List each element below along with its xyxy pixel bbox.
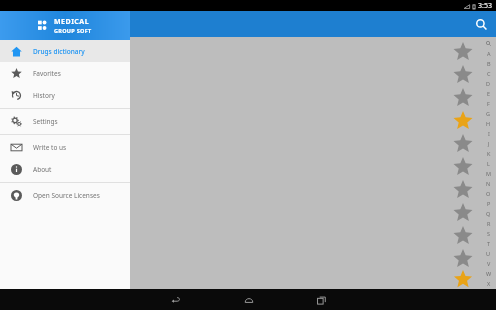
staticText: H	[486, 120, 491, 127]
button[interactable]: G	[484, 108, 493, 118]
button[interactable]: J	[484, 138, 493, 148]
staticText: F	[487, 100, 490, 107]
button[interactable]: X	[484, 278, 493, 288]
button[interactable]: M	[484, 168, 493, 178]
staticText: C	[487, 70, 491, 77]
button[interactable]: Home	[240, 291, 258, 309]
staticText: About	[33, 165, 52, 174]
button[interactable]: Rating star	[451, 155, 474, 178]
button[interactable]: Search	[472, 15, 490, 33]
staticText: MEDICAL	[54, 17, 90, 27]
button[interactable]: P	[484, 198, 493, 208]
button[interactable]: Q	[484, 208, 493, 218]
button[interactable]: E	[484, 88, 493, 98]
button[interactable]: Rating star	[451, 86, 474, 109]
button[interactable]: Rating star	[451, 224, 474, 247]
staticText: T	[487, 240, 491, 247]
staticText: 3:53	[478, 1, 492, 11]
staticText: L	[487, 160, 490, 167]
button[interactable]: S	[484, 228, 493, 238]
button[interactable]: Back	[167, 291, 185, 309]
button[interactable]: U	[484, 248, 493, 258]
button[interactable]: T	[484, 238, 493, 248]
button[interactable]: Rating star	[451, 247, 474, 270]
staticText: History	[33, 91, 55, 100]
staticText: E	[487, 90, 491, 97]
staticText: J	[488, 140, 490, 147]
button[interactable]: C	[484, 68, 493, 78]
staticText: O	[486, 190, 491, 197]
staticText: G	[486, 110, 491, 117]
staticText: Settings	[33, 117, 58, 126]
staticText: Favorites	[33, 69, 61, 78]
button[interactable]: N	[484, 178, 493, 188]
staticText: M	[486, 170, 491, 177]
button[interactable]: Search index	[484, 39, 493, 48]
staticText: U	[486, 250, 491, 257]
button[interactable]: A	[484, 48, 493, 58]
button[interactable]: L	[484, 158, 493, 168]
staticText: Write to us	[33, 143, 67, 152]
button[interactable]: Rating star	[451, 201, 474, 224]
staticText: A	[487, 50, 491, 57]
staticText: Drugs dictionary	[33, 47, 85, 56]
button[interactable]: D	[484, 78, 493, 88]
button[interactable]: I	[484, 128, 493, 138]
button[interactable]: W	[484, 268, 493, 278]
button[interactable]: Rating star	[451, 109, 474, 132]
button[interactable]: History	[0, 84, 130, 106]
button[interactable]: R	[484, 218, 493, 228]
staticText: D	[486, 80, 491, 87]
staticText: Open Source Licenses	[33, 191, 100, 200]
staticText: B	[487, 60, 491, 67]
staticText: W	[486, 270, 492, 277]
staticText: N	[486, 180, 491, 187]
button[interactable]: Rating star	[451, 63, 474, 86]
button[interactable]: Rating star	[451, 40, 474, 63]
button[interactable]: About	[0, 158, 130, 180]
button[interactable]: O	[484, 188, 493, 198]
button[interactable]: V	[484, 258, 493, 268]
button[interactable]: Settings	[0, 110, 130, 132]
button[interactable]: Favorites	[0, 62, 130, 84]
staticText: S	[487, 230, 491, 237]
staticText: K	[487, 150, 491, 157]
staticText: R	[487, 220, 491, 227]
button[interactable]: Rating star	[451, 132, 474, 155]
button[interactable]: Open Source Licenses	[0, 184, 130, 206]
button[interactable]: K	[484, 148, 493, 158]
button[interactable]: Rating star	[451, 178, 474, 201]
button[interactable]: Rating star	[451, 270, 474, 289]
staticText: P	[487, 200, 491, 207]
staticText: GROUP SOFT	[54, 27, 92, 34]
staticText: X	[487, 280, 491, 287]
button[interactable]: B	[484, 58, 493, 68]
staticText: I	[488, 130, 490, 137]
staticText: Q	[486, 210, 491, 217]
button[interactable]: F	[484, 98, 493, 108]
staticText: V	[487, 260, 491, 267]
button[interactable]: Write to us	[0, 136, 130, 158]
button[interactable]: Recent apps	[312, 291, 330, 309]
button[interactable]: H	[484, 118, 493, 128]
button[interactable]: Drugs dictionary	[0, 40, 130, 62]
